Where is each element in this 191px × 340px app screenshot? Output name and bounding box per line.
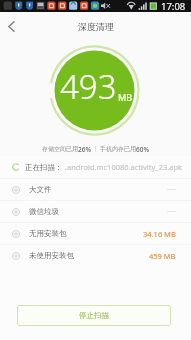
button[interactable]: 微信垃圾 (12, 201, 176, 222)
staticText: 459 MB (149, 251, 176, 261)
staticText: 26% (78, 145, 91, 154)
staticText: 60% (136, 145, 149, 154)
button[interactable]: 停止扫描 (17, 305, 171, 326)
button[interactable]: 正在扫描： (12, 156, 186, 178)
button[interactable]: 大文件 (12, 179, 176, 200)
staticText: 34.16 MB (143, 229, 176, 239)
staticText: 未使用安装包 (29, 251, 74, 260)
staticText: 存储空间已用 (42, 145, 78, 153)
staticText: 493 (60, 64, 117, 109)
staticText: 正在扫描： (25, 163, 63, 172)
staticText: 无用安装包 (29, 229, 67, 238)
button[interactable]: 无用安装包 (12, 223, 176, 244)
staticText: 17:08 (161, 0, 186, 12)
staticText: 停止扫描 (79, 311, 109, 320)
staticText: .android.mc10086.activity_23.apk (65, 162, 183, 172)
staticText: MB (118, 91, 133, 103)
staticText: 微信垃圾 (29, 207, 59, 216)
button[interactable]: 未使用安装包 (12, 245, 176, 266)
staticText: 手机内存已用 (100, 145, 136, 153)
button[interactable]: Back (0, 15, 22, 37)
staticText: 深度清理 (78, 21, 114, 32)
staticText: 大文件 (29, 185, 52, 194)
